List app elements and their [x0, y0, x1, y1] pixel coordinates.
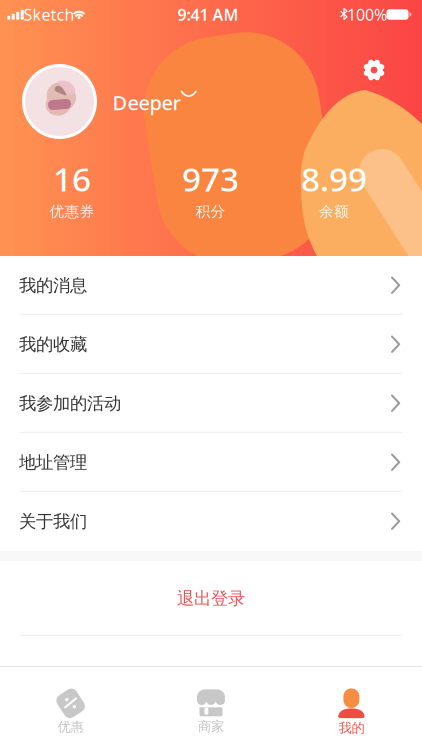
staticText: Deeper: [112, 89, 180, 116]
staticText: Sketch: [23, 4, 74, 25]
staticText: 退出登录: [177, 588, 245, 609]
button[interactable]: 973: [144, 156, 277, 221]
staticText: 9:41 AM: [177, 4, 238, 25]
staticText: 优惠: [58, 719, 84, 735]
button[interactable]: 8.99: [277, 156, 391, 221]
button[interactable]: [22, 64, 97, 139]
staticText: 关于我们: [19, 511, 87, 532]
staticText: 地址管理: [19, 452, 87, 473]
staticText: 16: [53, 156, 91, 201]
staticText: 积分: [195, 203, 225, 221]
staticText: 100%: [347, 4, 387, 25]
button[interactable]: Deeper: [100, 89, 204, 115]
staticText: 973: [182, 156, 239, 201]
staticText: 优惠券: [49, 203, 94, 221]
staticText: 8.99: [301, 156, 367, 201]
button[interactable]: 16: [0, 156, 144, 221]
staticText: 我的收藏: [19, 334, 87, 355]
staticText: 商家: [198, 718, 224, 735]
staticText: 我参加的活动: [19, 393, 121, 414]
button[interactable]: 商家: [156, 682, 266, 742]
button[interactable]: [362, 58, 385, 81]
button[interactable]: 退出登录: [0, 561, 422, 636]
staticText: 余额: [319, 203, 349, 221]
button[interactable]: 我的: [296, 682, 406, 742]
button[interactable]: 优惠: [16, 682, 126, 742]
staticText: 我的: [338, 720, 364, 736]
staticText: 我的消息: [19, 275, 87, 296]
